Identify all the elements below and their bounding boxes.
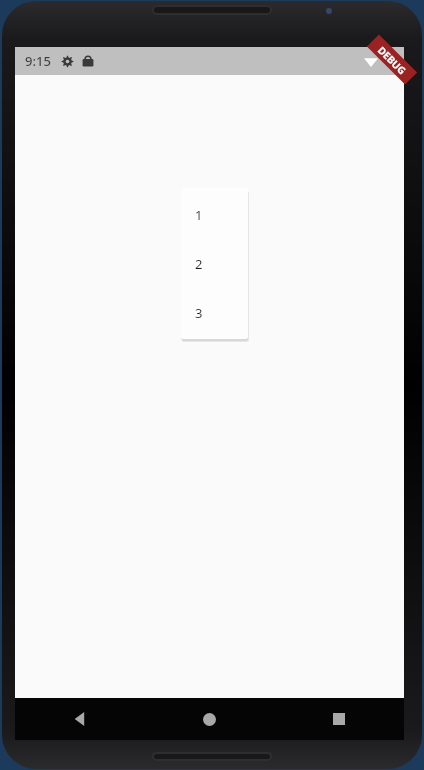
button[interactable]: 3 [181,290,248,335]
staticText: 2 [195,255,203,273]
button[interactable]: 1 [181,188,248,339]
staticText: DEBUG [375,43,409,77]
staticText: 3 [195,304,203,322]
button[interactable]: Recent apps [274,698,404,740]
staticText: 9:15 [25,52,51,70]
button[interactable]: Back [15,698,144,740]
button[interactable]: 1 [181,192,248,237]
staticText: 1 [195,206,203,224]
button[interactable]: Home [144,698,274,740]
button[interactable]: 2 [181,241,248,286]
